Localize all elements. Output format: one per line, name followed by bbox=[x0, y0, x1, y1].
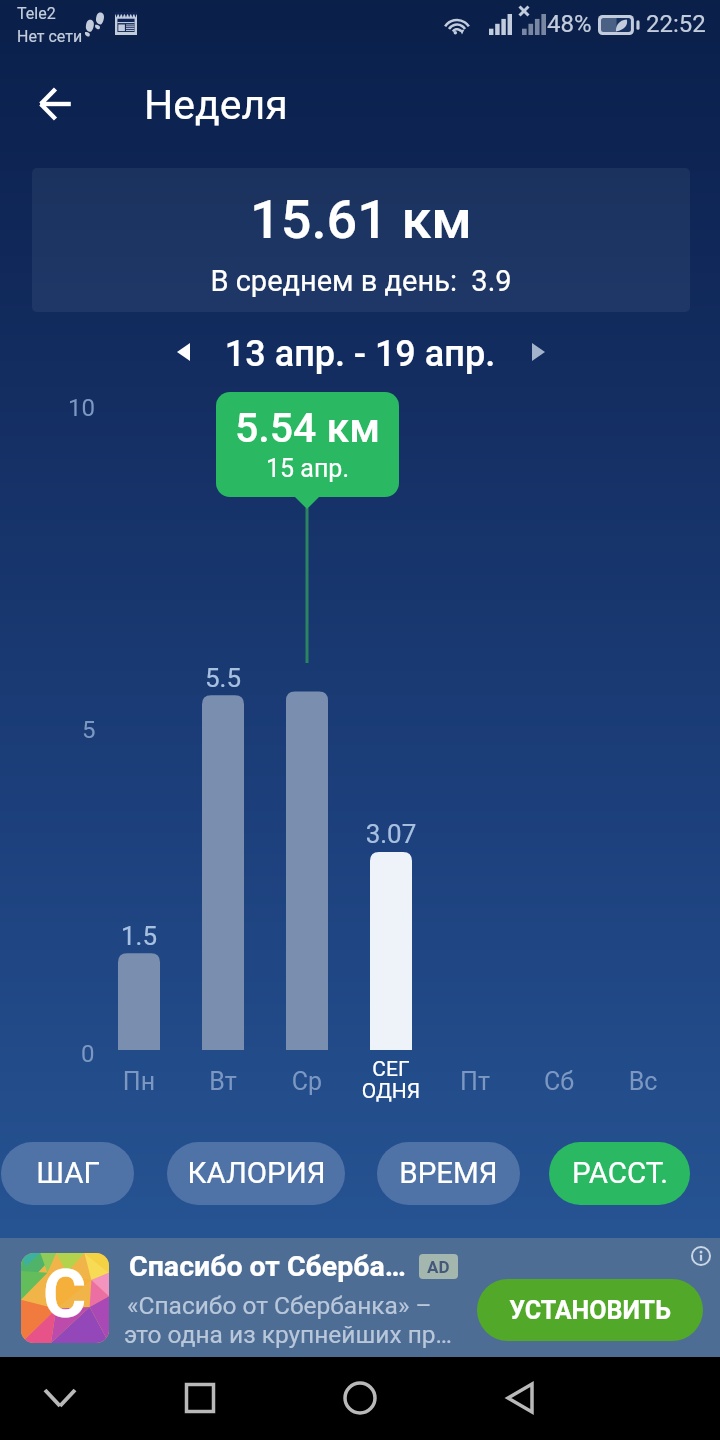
staticText: Сб bbox=[499, 1067, 619, 1096]
staticText: РАССТ. bbox=[572, 1156, 668, 1191]
staticText: Пт bbox=[415, 1067, 535, 1096]
button[interactable]: Главный экран bbox=[324, 1362, 396, 1434]
staticText: 0 bbox=[81, 1040, 95, 1068]
button[interactable]: Назад bbox=[22, 71, 88, 137]
button[interactable]: Предыдущая неделя bbox=[160, 329, 206, 375]
button[interactable]: ШАГ bbox=[1, 1142, 134, 1205]
staticText: ШАГ bbox=[36, 1156, 100, 1191]
staticText: 15 апр. bbox=[216, 454, 399, 483]
staticText: 13 апр. - 19 апр. bbox=[130, 333, 590, 375]
staticText: УСТАНОВИТЬ bbox=[509, 1296, 671, 1325]
staticText: «Спасибо от Сбербанка» – bbox=[127, 1291, 432, 1320]
button[interactable]: Реклама: Спасибо от Сбербанка bbox=[0, 1238, 720, 1357]
button[interactable]: 5.54 км bbox=[216, 392, 399, 497]
staticText: Ср bbox=[247, 1067, 367, 1096]
staticText: СЕГ bbox=[321, 1057, 461, 1082]
staticText: ОДНЯ bbox=[321, 1079, 461, 1104]
button[interactable]: Информация о рекламе bbox=[688, 1243, 714, 1269]
staticText: Пн bbox=[79, 1067, 199, 1096]
staticText: Спасибо от Сберба… bbox=[129, 1250, 406, 1283]
staticText: Tele2 bbox=[17, 4, 56, 23]
staticText: ВРЕМЯ bbox=[399, 1156, 498, 1191]
staticText: 10 bbox=[68, 394, 95, 422]
staticText: 5 bbox=[82, 716, 96, 744]
button[interactable]: Недавние приложения bbox=[164, 1362, 236, 1434]
staticText: КАЛОРИЯ bbox=[187, 1156, 326, 1191]
button[interactable]: 15.61 км bbox=[32, 168, 690, 312]
button[interactable]: Скрыть клавиатуру bbox=[24, 1362, 96, 1434]
button[interactable]: КАЛОРИЯ bbox=[167, 1142, 345, 1205]
button[interactable]: УСТАНОВИТЬ bbox=[477, 1279, 703, 1341]
staticText: Нет сети bbox=[17, 27, 83, 46]
staticText: 15.61 км bbox=[32, 188, 690, 251]
staticText: 1.5 bbox=[59, 921, 219, 951]
button[interactable]: Следующая неделя bbox=[515, 329, 561, 375]
staticText: C bbox=[43, 1256, 87, 1333]
button[interactable]: ВРЕМЯ bbox=[377, 1142, 520, 1205]
staticText: Неделя bbox=[144, 81, 288, 129]
staticText: 5.5 bbox=[143, 663, 303, 693]
staticText: Вт bbox=[163, 1067, 283, 1096]
staticText: это одна из крупнейших пр… bbox=[124, 1320, 452, 1349]
staticText: AD bbox=[427, 1257, 450, 1277]
staticText: 5.54 км bbox=[216, 404, 399, 452]
button[interactable]: Назад bbox=[484, 1362, 556, 1434]
staticText: Вс bbox=[583, 1067, 703, 1096]
staticText: 22:52 bbox=[646, 10, 706, 38]
staticText: В среднем в день: 3.9 bbox=[32, 264, 690, 298]
button[interactable]: РАССТ. bbox=[549, 1142, 690, 1205]
staticText: 3.07 bbox=[311, 819, 471, 849]
staticText: 48% bbox=[547, 10, 592, 38]
